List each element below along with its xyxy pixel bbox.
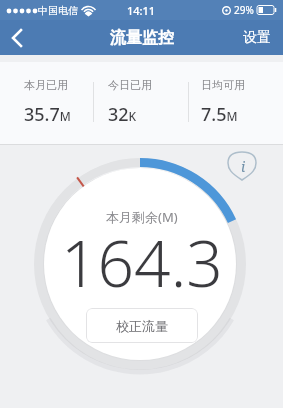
button[interactable]	[0, 20, 34, 55]
button[interactable]: 校正流量	[86, 308, 198, 343]
staticText: 校正流量	[116, 318, 168, 334]
button[interactable]: i	[227, 151, 257, 181]
staticText: i	[241, 157, 246, 176]
staticText: 32K	[108, 102, 137, 127]
button[interactable]: 设置	[231, 21, 283, 55]
staticText: 中国电信	[38, 4, 78, 17]
staticText: 164.3	[61, 219, 223, 306]
staticText: 设置	[243, 29, 271, 47]
button[interactable]: 今日已用	[94, 55, 188, 127]
staticText: 35.7M	[24, 102, 71, 127]
staticText: 7.5M	[201, 102, 238, 127]
button[interactable]: 日均可用	[189, 55, 283, 127]
staticText: 本月剩余(M)	[106, 208, 178, 226]
staticText: 本月已用	[24, 78, 68, 92]
staticText: 29%	[234, 3, 254, 17]
staticText: 日均可用	[201, 78, 245, 92]
staticText: 今日已用	[108, 78, 152, 92]
staticText: 流量监控	[110, 28, 174, 48]
button[interactable]: 本月已用	[0, 55, 93, 127]
staticText: 14:11	[127, 3, 156, 18]
